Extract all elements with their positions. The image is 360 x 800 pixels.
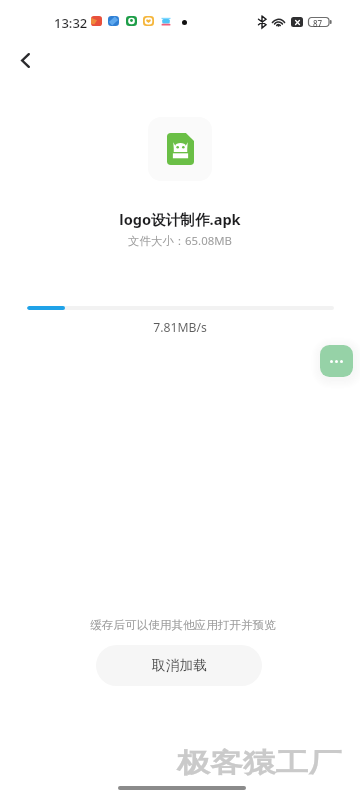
staticText: 13:32: [54, 14, 88, 32]
button[interactable]: Back: [7, 42, 43, 78]
staticText: 极客猿工厂: [177, 746, 342, 780]
staticText: 缓存后可以使用其他应用打开并预览: [3, 618, 360, 633]
staticText: logo设计制作.apk: [0, 209, 360, 229]
button[interactable]: 取消加载: [96, 645, 262, 686]
button[interactable]: More options: [320, 345, 353, 377]
staticText: 取消加载: [152, 657, 207, 674]
staticText: 87: [313, 18, 323, 29]
staticText: 文件大小：65.08MB: [0, 233, 360, 249]
staticText: 7.81MB/s: [0, 319, 360, 336]
